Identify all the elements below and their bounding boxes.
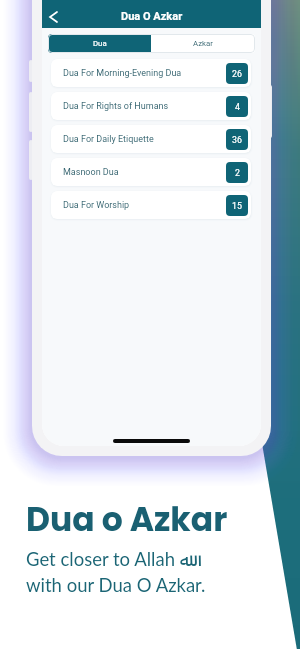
staticText: 4 [235, 102, 240, 112]
staticText: Dua For Daily Etiquette [63, 134, 226, 145]
button[interactable]: Dua For Worship [51, 191, 251, 219]
staticText: 36 [232, 135, 242, 145]
staticText: Dua O Azkar [121, 10, 183, 23]
button[interactable]: Back [42, 5, 65, 29]
staticText: Azkar [193, 39, 213, 48]
button[interactable]: Masnoon Dua [51, 158, 251, 186]
staticText: Dua [93, 39, 107, 48]
staticText: 2 [235, 168, 240, 178]
staticText: Dua o Azkar [26, 496, 228, 542]
button[interactable]: Azkar [151, 34, 255, 53]
staticText: 15 [232, 201, 242, 211]
button[interactable]: Dua For Morning-Evening Dua [51, 59, 251, 87]
button[interactable]: Dua [48, 34, 151, 53]
staticText: Dua For Worship [63, 200, 226, 211]
staticText: Dua For Rights of Humans [63, 101, 226, 112]
staticText: Get closer to Allah ﷲ with our Dua O Azk… [26, 548, 206, 596]
button[interactable]: Dua For Daily Etiquette [51, 125, 251, 153]
staticText: 26 [232, 69, 242, 79]
staticText: Masnoon Dua [63, 167, 226, 178]
button[interactable]: Dua For Rights of Humans [51, 92, 251, 120]
staticText: Dua For Morning-Evening Dua [63, 68, 226, 79]
